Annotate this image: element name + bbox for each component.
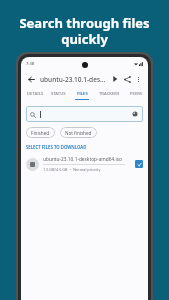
button[interactable]: More options <box>133 74 144 85</box>
staticText: FILES <box>77 91 88 97</box>
button[interactable]: Start <box>109 73 121 85</box>
button[interactable]: FILES <box>70 88 94 102</box>
button[interactable]: PEERS <box>124 88 148 102</box>
button[interactable]: ubuntu-23.10.1-desktop-amd64.iso <box>21 153 148 175</box>
staticText: ubuntu-23.10.1-des… <box>40 75 106 84</box>
staticText: STATUS <box>51 91 66 97</box>
button[interactable]: Voice search <box>26 106 143 122</box>
staticText: DETAILS <box>27 91 44 97</box>
button[interactable]: Back <box>25 73 38 86</box>
button[interactable]: Selected <box>135 160 143 168</box>
button[interactable]: Finished <box>26 127 55 138</box>
button[interactable]: Not finished <box>60 127 97 138</box>
staticText: TRACKERS <box>99 91 120 97</box>
button[interactable]: TRACKERS <box>94 88 124 102</box>
button[interactable]: Voice search <box>131 110 139 118</box>
staticText: Not finished <box>65 130 92 136</box>
staticText: Search through files quickly <box>19 14 150 47</box>
staticText: ubuntu-23.10.1-desktop-amd64.iso <box>43 156 122 163</box>
staticText: SELECT FILES TO DOWNLOAD <box>26 144 87 150</box>
staticText: 1.5 GB/4.6 GB • Normal priority <box>43 167 101 172</box>
button[interactable]: DETAILS <box>24 88 47 102</box>
staticText: Finished <box>31 130 50 136</box>
button[interactable]: Share <box>121 73 133 85</box>
staticText: 7:38 <box>26 61 34 66</box>
staticText: PEERS <box>130 91 143 97</box>
button[interactable]: STATUS <box>47 88 70 102</box>
